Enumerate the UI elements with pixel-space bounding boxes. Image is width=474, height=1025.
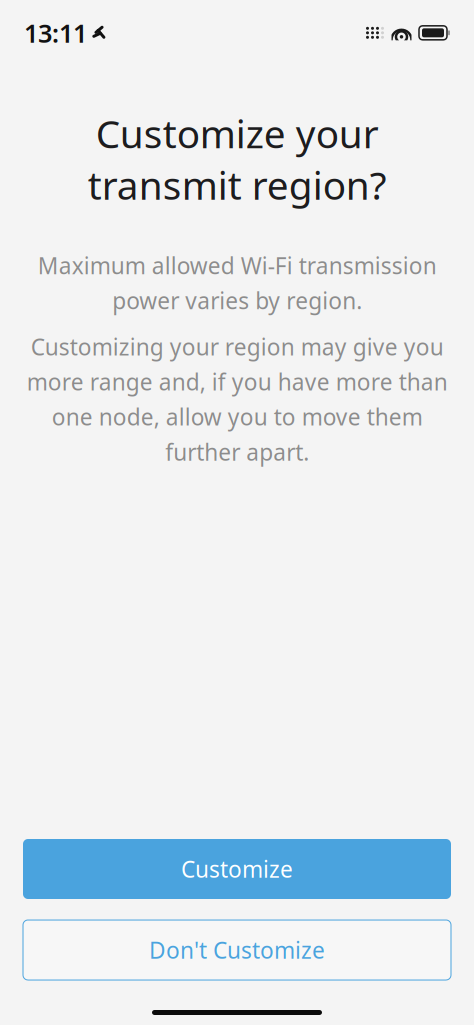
staticText: Customize your transmit region? xyxy=(87,108,386,210)
button[interactable]: Don't Customize xyxy=(23,920,451,980)
staticText: Maximum allowed Wi-Fi transmission power… xyxy=(37,250,436,315)
staticText: 13:11 xyxy=(24,16,87,50)
staticText: Customizing your region may give you mor… xyxy=(26,331,447,467)
staticText: Don't Customize xyxy=(149,935,325,965)
staticText: Customize xyxy=(181,854,293,884)
button[interactable]: Customize xyxy=(23,839,451,899)
